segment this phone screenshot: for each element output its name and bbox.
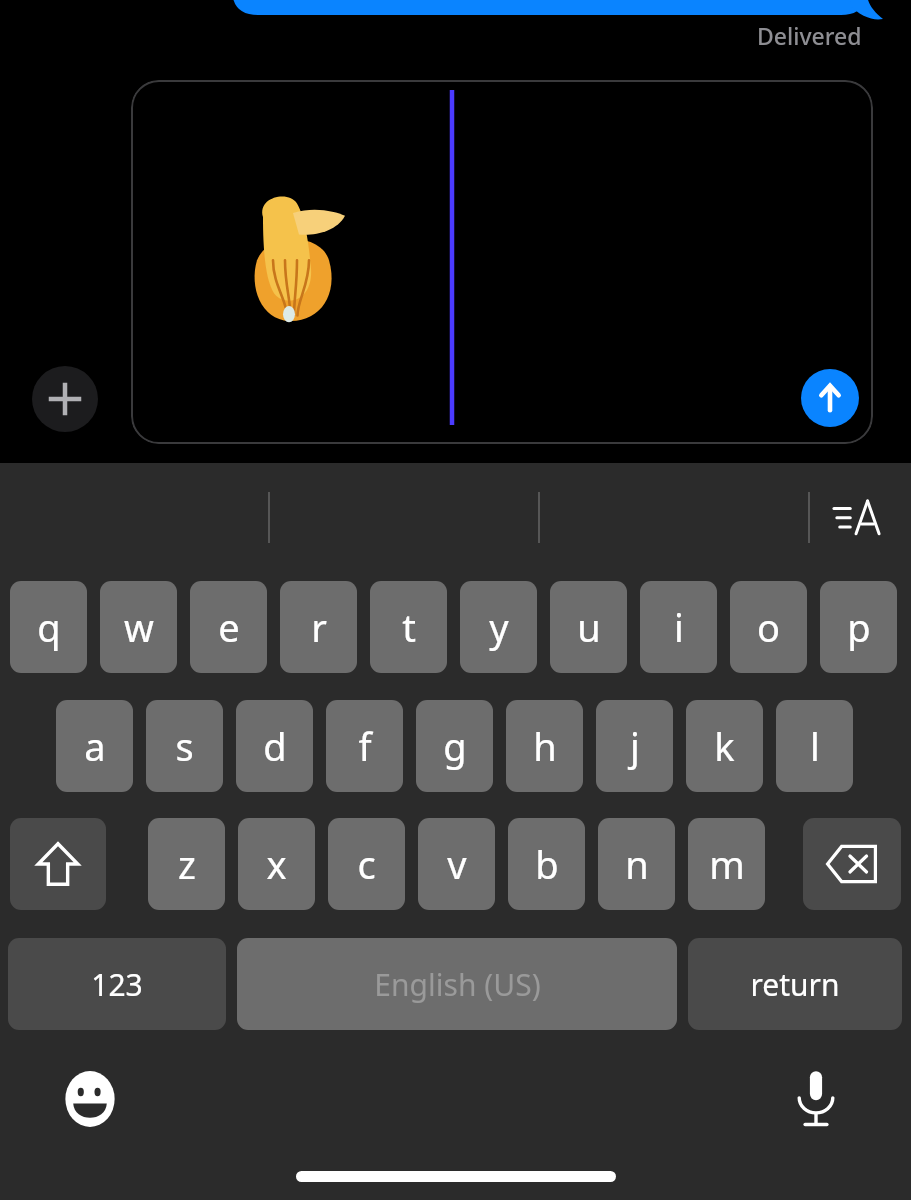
button[interactable]: y: [460, 581, 537, 673]
button[interactable]: u: [550, 581, 627, 673]
staticText: h: [533, 720, 557, 772]
button[interactable]: i: [640, 581, 717, 673]
staticText: w: [124, 601, 154, 653]
button[interactable]: f: [326, 700, 403, 792]
button[interactable]: v: [418, 818, 495, 910]
staticText: z: [178, 838, 196, 890]
staticText: s: [175, 720, 194, 772]
button[interactable]: p: [820, 581, 897, 673]
button[interactable]: n: [598, 818, 675, 910]
staticText: Delivered: [757, 20, 862, 51]
button[interactable]: q: [10, 581, 87, 673]
staticText: j: [630, 720, 640, 772]
button[interactable]: d: [236, 700, 313, 792]
button[interactable]: w: [100, 581, 177, 673]
button[interactable]: 123: [8, 938, 226, 1030]
staticText: k: [714, 720, 735, 772]
button[interactable]: return: [688, 938, 902, 1030]
button[interactable]: Add attachment: [32, 366, 98, 432]
button[interactable]: j: [596, 700, 673, 792]
staticText: b: [535, 838, 559, 890]
staticText: v: [447, 838, 467, 890]
staticText: y: [489, 601, 509, 653]
button[interactable]: Send: [801, 369, 859, 427]
staticText: x: [266, 838, 287, 890]
button[interactable]: [131, 80, 873, 444]
staticText: r: [311, 601, 327, 653]
button[interactable]: e: [190, 581, 267, 673]
button[interactable]: s: [146, 700, 223, 792]
button[interactable]: Dictation: [780, 1063, 852, 1135]
staticText: p: [847, 601, 871, 653]
button[interactable]: m: [688, 818, 765, 910]
staticText: l: [810, 720, 820, 772]
button[interactable]: k: [686, 700, 763, 792]
staticText: i: [674, 601, 684, 653]
button[interactable]: z: [148, 818, 225, 910]
staticText: q: [37, 601, 61, 653]
button[interactable]: o: [730, 581, 807, 673]
staticText: return: [750, 964, 840, 1005]
staticText: c: [357, 838, 376, 890]
staticText: e: [218, 601, 240, 653]
staticText: m: [709, 838, 745, 890]
staticText: g: [443, 720, 467, 772]
button[interactable]: g: [416, 700, 493, 792]
button[interactable]: Text formatting: [822, 485, 892, 549]
staticText: f: [358, 720, 372, 772]
button[interactable]: a: [56, 700, 133, 792]
staticText: u: [577, 601, 601, 653]
staticText: d: [263, 720, 287, 772]
staticText: n: [625, 838, 649, 890]
button[interactable]: c: [328, 818, 405, 910]
button[interactable]: l: [776, 700, 853, 792]
staticText: 123: [91, 964, 143, 1005]
staticText: o: [757, 601, 780, 653]
staticText: a: [84, 720, 106, 772]
button[interactable]: Shift: [10, 818, 106, 910]
staticText: English (US): [374, 964, 541, 1005]
button[interactable]: x: [238, 818, 315, 910]
button[interactable]: t: [370, 581, 447, 673]
button[interactable]: Backspace: [803, 818, 901, 910]
button[interactable]: r: [280, 581, 357, 673]
button[interactable]: h: [506, 700, 583, 792]
button[interactable]: English (US): [237, 938, 677, 1030]
button[interactable]: b: [508, 818, 585, 910]
button[interactable]: Emoji: [54, 1063, 126, 1135]
staticText: t: [402, 601, 416, 653]
